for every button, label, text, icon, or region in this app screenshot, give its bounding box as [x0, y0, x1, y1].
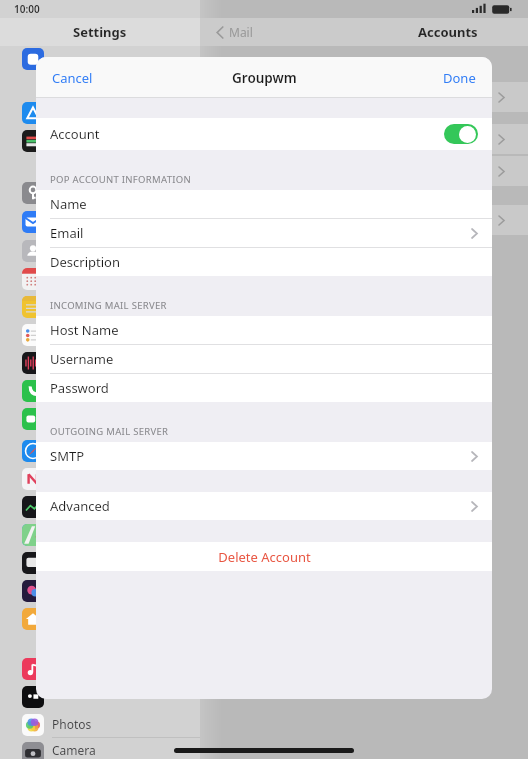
- button[interactable]: Description: [36, 248, 492, 276]
- staticText: Description: [50, 253, 120, 271]
- staticText: Accounts: [418, 23, 478, 41]
- button[interactable]: Username: [36, 345, 492, 373]
- button[interactable]: Advanced: [36, 492, 492, 520]
- staticText: SMTP: [50, 447, 85, 465]
- staticText: Settings: [73, 23, 127, 41]
- staticText: Delete Account: [218, 548, 311, 566]
- staticText: POP ACCOUNT INFORMATION: [50, 173, 191, 186]
- staticText: INCOMING MAIL SERVER: [50, 299, 167, 312]
- button[interactable]: SMTP: [36, 442, 492, 470]
- button[interactable]: Password: [36, 374, 492, 402]
- button[interactable]: Account: [36, 118, 492, 150]
- staticText: Groupwm: [232, 69, 297, 87]
- staticText: Password: [50, 379, 109, 397]
- staticText: Host Name: [50, 321, 119, 339]
- staticText: Account: [50, 125, 100, 143]
- staticText: Done: [443, 69, 476, 87]
- staticText: Username: [50, 350, 114, 368]
- staticText: Camera: [52, 742, 96, 758]
- staticText: Cancel: [52, 69, 93, 87]
- staticText: Email: [50, 224, 84, 242]
- staticText: Photos: [52, 716, 92, 732]
- button[interactable]: Done: [433, 63, 486, 93]
- staticText: Name: [50, 195, 87, 213]
- staticText: Mail: [229, 24, 253, 40]
- button[interactable]: Cancel: [42, 63, 103, 93]
- button[interactable]: Delete Account: [36, 542, 492, 571]
- staticText: OUTGOING MAIL SERVER: [50, 425, 169, 438]
- staticText: 10:00: [14, 2, 40, 16]
- button[interactable]: Name: [36, 190, 492, 218]
- staticText: Advanced: [50, 497, 110, 515]
- button[interactable]: Account enabled: [444, 124, 478, 144]
- button[interactable]: Email: [36, 219, 492, 247]
- button[interactable]: Host Name: [36, 316, 492, 344]
